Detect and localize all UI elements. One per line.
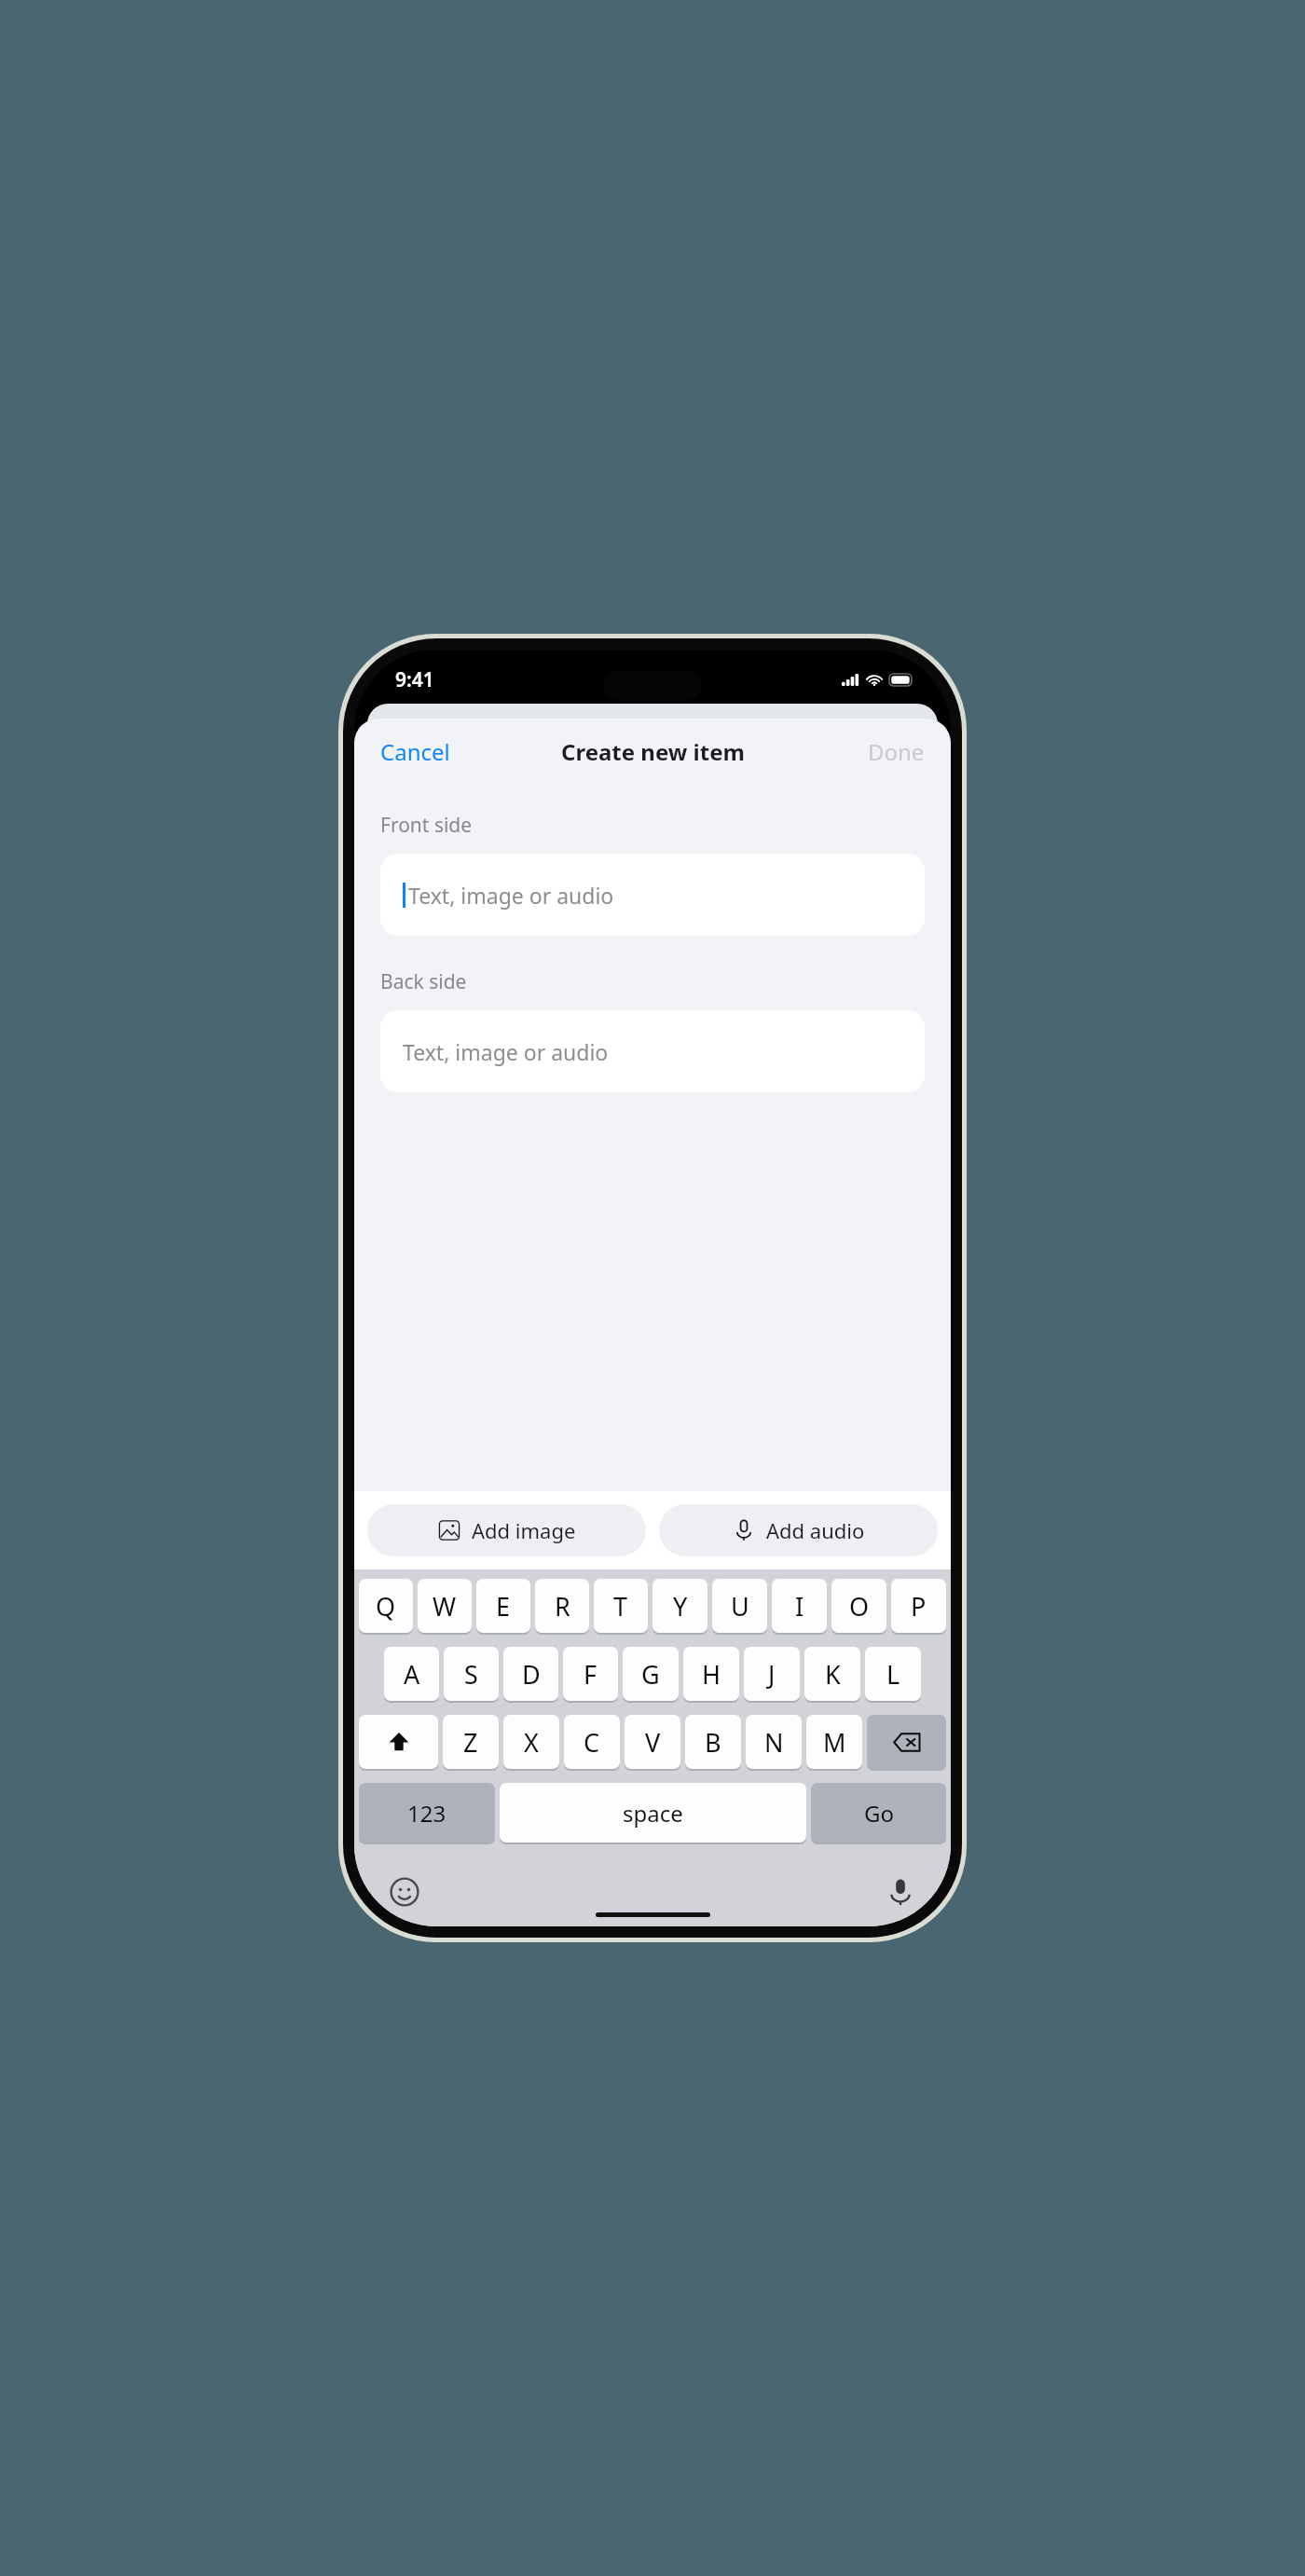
staticText: V <box>645 1725 661 1760</box>
staticText: N <box>764 1725 784 1760</box>
staticText: Text, image or audio <box>408 881 614 910</box>
staticText: Done <box>868 736 925 767</box>
button[interactable]: T <box>594 1579 648 1633</box>
button[interactable]: V <box>625 1715 680 1769</box>
staticText: T <box>613 1589 628 1624</box>
staticText: U <box>731 1589 749 1624</box>
button[interactable]: Emoji <box>382 1870 427 1914</box>
staticText: K <box>825 1657 841 1692</box>
button[interactable]: Add image <box>367 1504 646 1556</box>
button[interactable]: S <box>444 1647 499 1701</box>
button[interactable]: X <box>503 1715 559 1769</box>
button[interactable]: D <box>503 1647 558 1701</box>
button[interactable]: B <box>685 1715 741 1769</box>
staticText: Add audio <box>766 1516 865 1544</box>
staticText: Q <box>376 1589 396 1624</box>
staticText: 9:41 <box>395 666 434 693</box>
button[interactable]: Text, image or audio <box>380 1010 925 1092</box>
button[interactable]: Shift <box>359 1715 438 1769</box>
button[interactable]: J <box>744 1647 800 1701</box>
button[interactable]: Backspace <box>867 1715 946 1769</box>
staticText: J <box>768 1657 776 1692</box>
button[interactable]: L <box>865 1647 921 1701</box>
staticText: Front side <box>380 812 473 839</box>
button[interactable]: F <box>563 1647 618 1701</box>
button[interactable]: E <box>476 1579 530 1633</box>
staticText: Go <box>864 1798 894 1829</box>
button[interactable]: Y <box>652 1579 707 1633</box>
staticText: I <box>795 1589 804 1624</box>
button[interactable]: H <box>683 1647 739 1701</box>
button[interactable]: K <box>804 1647 860 1701</box>
button[interactable]: W <box>418 1579 472 1633</box>
button[interactable]: Cancel <box>365 729 465 774</box>
button[interactable]: C <box>564 1715 620 1769</box>
staticText: L <box>886 1657 900 1692</box>
button[interactable]: U <box>712 1579 767 1633</box>
button[interactable]: space <box>500 1783 806 1843</box>
staticText: X <box>524 1725 539 1760</box>
staticText: A <box>404 1657 420 1692</box>
staticText: H <box>702 1657 721 1692</box>
button[interactable]: Add audio <box>659 1504 938 1556</box>
button[interactable]: Go <box>811 1783 946 1843</box>
staticText: Create new item <box>561 736 745 767</box>
button[interactable]: Dictation <box>878 1870 923 1914</box>
staticText: R <box>555 1589 570 1624</box>
staticText: Cancel <box>380 736 450 767</box>
button[interactable]: Text, image or audio <box>380 854 925 936</box>
button[interactable]: M <box>806 1715 862 1769</box>
button[interactable]: N <box>746 1715 802 1769</box>
button[interactable]: O <box>831 1579 886 1633</box>
staticText: P <box>911 1589 927 1624</box>
staticText: 123 <box>407 1798 446 1829</box>
staticText: Back side <box>380 968 467 995</box>
staticText: G <box>641 1657 660 1692</box>
button[interactable]: G <box>623 1647 679 1701</box>
staticText: E <box>496 1589 511 1624</box>
button[interactable]: Done <box>853 729 940 774</box>
staticText: Z <box>463 1725 478 1760</box>
staticText: space <box>623 1798 683 1829</box>
button[interactable]: R <box>535 1579 589 1633</box>
button[interactable]: 123 <box>359 1783 495 1843</box>
staticText: B <box>705 1725 721 1760</box>
button[interactable]: Q <box>359 1579 413 1633</box>
button[interactable]: I <box>772 1579 827 1633</box>
button[interactable]: P <box>891 1579 946 1633</box>
button[interactable]: Z <box>443 1715 499 1769</box>
staticText: F <box>584 1657 598 1692</box>
staticText: O <box>849 1589 870 1624</box>
staticText: Add image <box>472 1516 576 1544</box>
staticText: M <box>823 1725 846 1760</box>
staticText: C <box>584 1725 600 1760</box>
staticText: S <box>464 1657 478 1692</box>
staticText: W <box>433 1589 457 1624</box>
staticText: Y <box>673 1589 688 1624</box>
button[interactable]: A <box>384 1647 439 1701</box>
staticText: D <box>522 1657 541 1692</box>
staticText: Text, image or audio <box>403 1037 609 1066</box>
